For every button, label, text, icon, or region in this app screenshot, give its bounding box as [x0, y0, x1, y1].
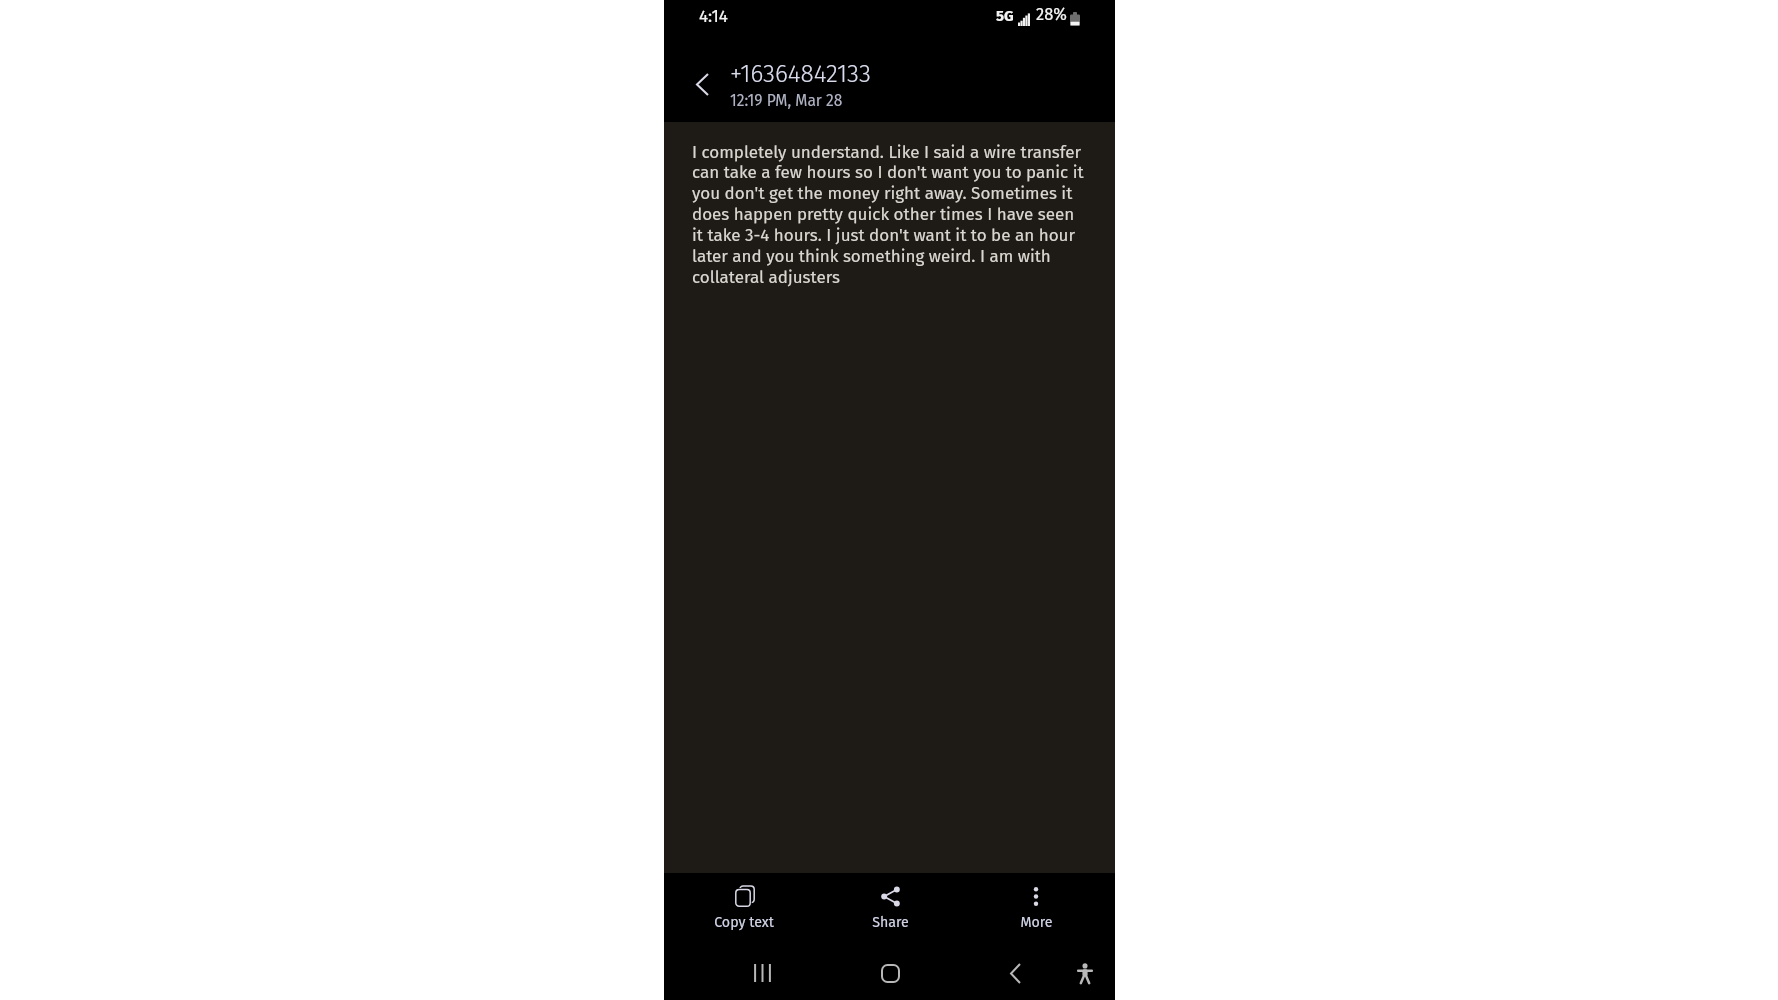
staticText: Share — [872, 914, 909, 931]
button[interactable]: Copy text — [671, 873, 817, 948]
button[interactable]: I completely understand. Like I said a w… — [664, 122, 1115, 873]
staticText: 12:19 PM, Mar 28 — [730, 91, 843, 110]
button[interactable]: Back — [681, 63, 723, 105]
button[interactable]: Home — [870, 953, 910, 993]
button[interactable]: Back — [995, 953, 1035, 993]
button[interactable]: Share — [817, 873, 963, 948]
button[interactable]: +16364842133 — [730, 59, 871, 110]
staticText: 4:14 — [699, 6, 728, 26]
staticText: More — [1020, 914, 1053, 931]
button[interactable]: Accessibility — [1065, 953, 1105, 993]
staticText: I completely understand. Like I said a w… — [692, 142, 1084, 288]
staticText: 28% — [1036, 5, 1067, 25]
staticText: 5G — [996, 7, 1014, 25]
staticText: Copy text — [714, 914, 774, 931]
button[interactable]: Recent apps — [742, 953, 782, 993]
staticText: +16364842133 — [730, 59, 871, 88]
button[interactable]: More — [963, 873, 1109, 948]
